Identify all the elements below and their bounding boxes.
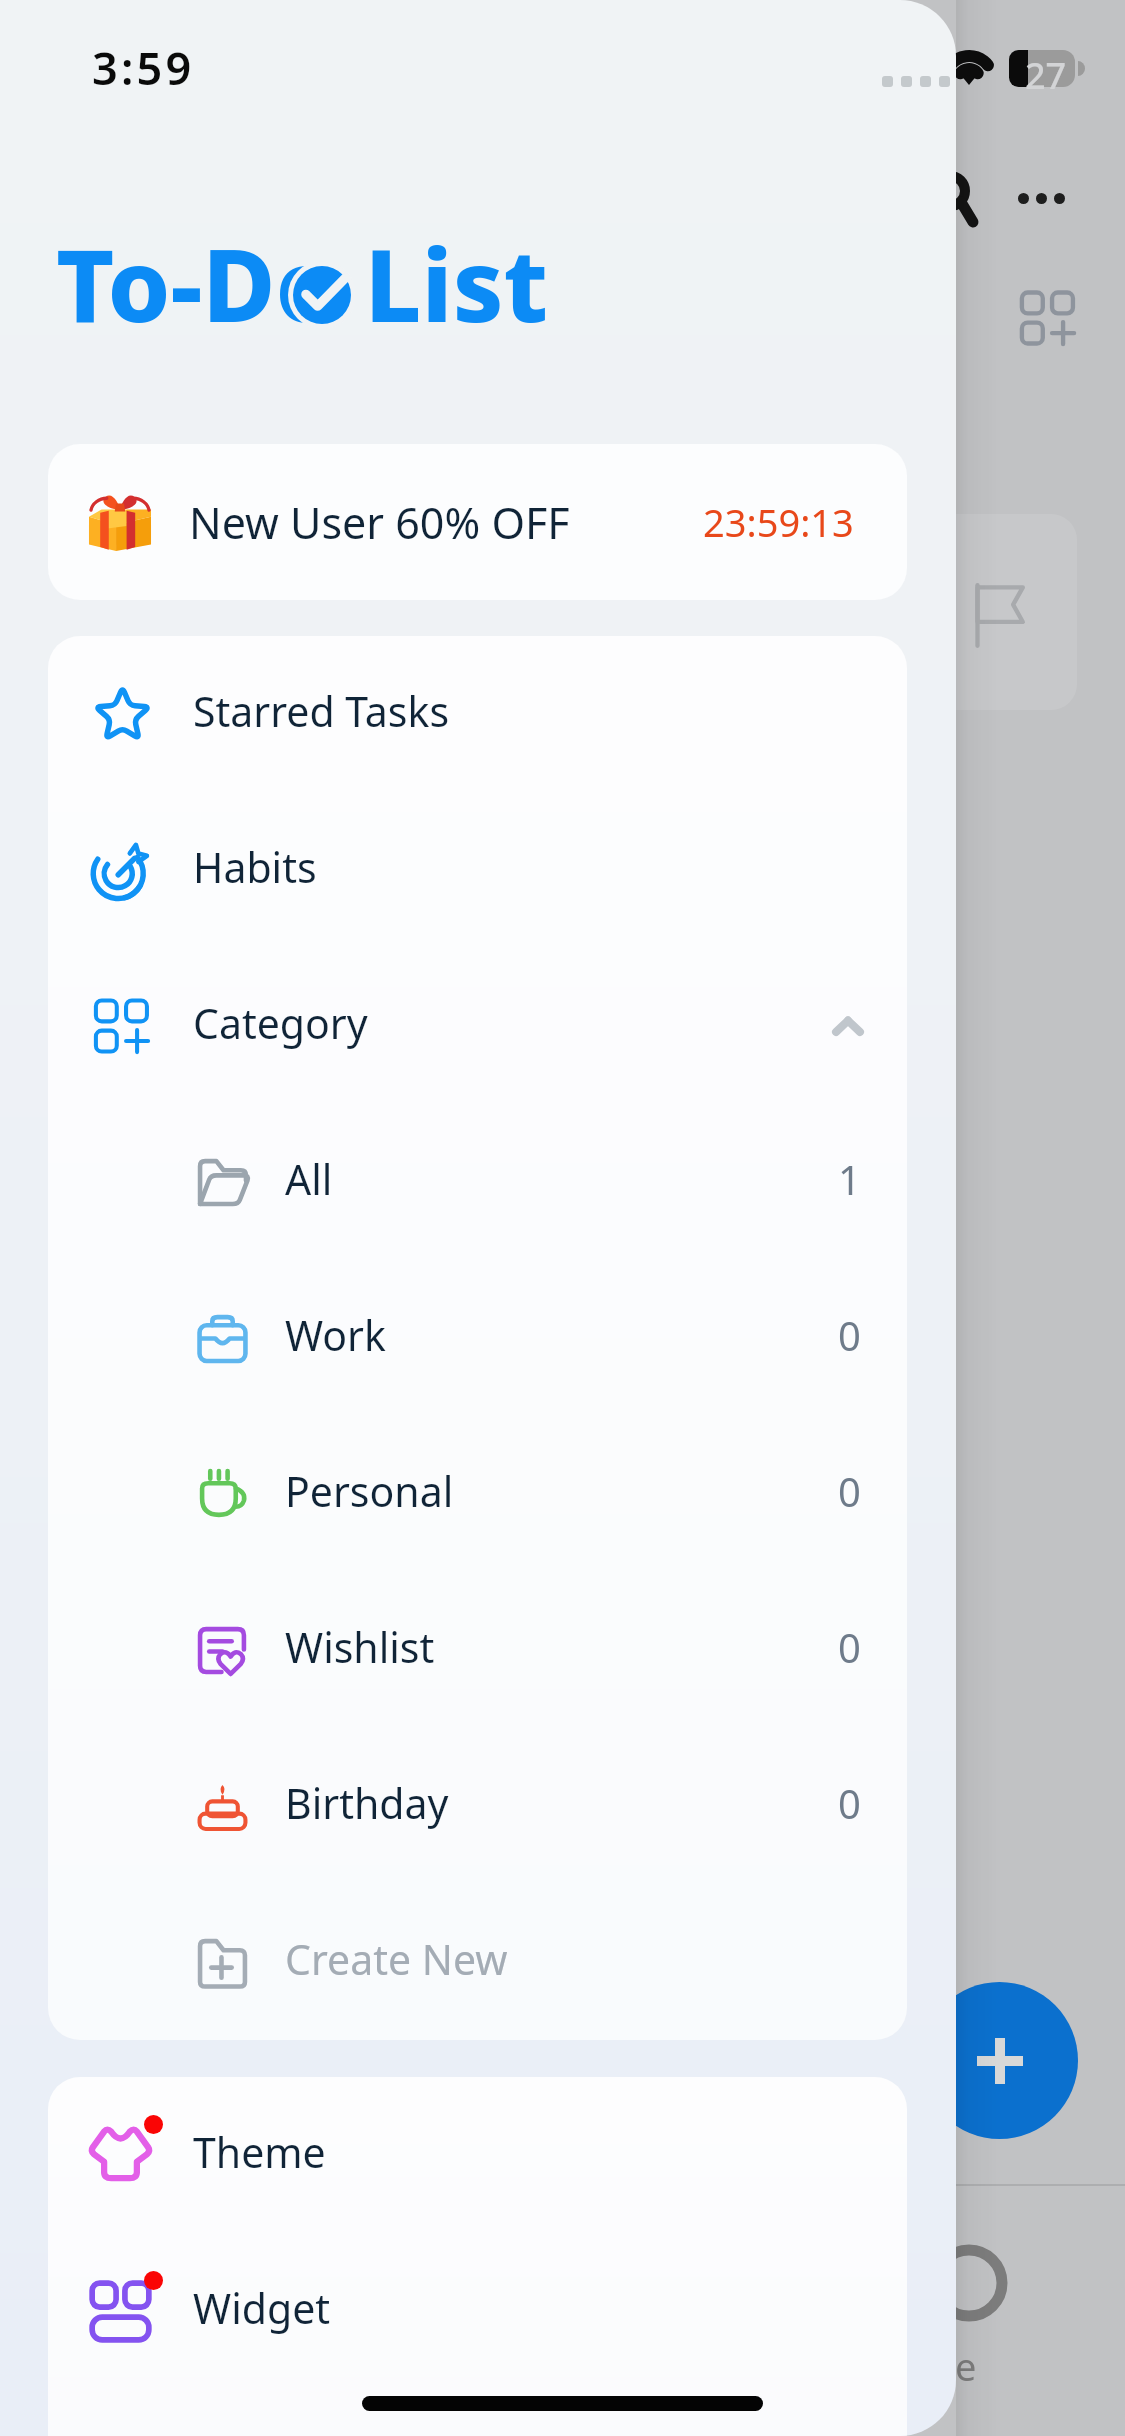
button[interactable]: Personal	[48, 1416, 907, 1572]
staticText: To-Do List	[56, 215, 549, 351]
staticText: 1	[838, 1152, 861, 1206]
staticText: 0	[838, 1776, 861, 1830]
staticText: 3:59	[92, 37, 195, 98]
staticText: e	[955, 2340, 977, 2392]
button[interactable]: More options	[994, 150, 1090, 246]
staticText: 0	[838, 1620, 861, 1674]
staticText: 0	[838, 1308, 861, 1362]
button[interactable]: Add category	[1000, 270, 1096, 366]
staticText: Category	[193, 995, 368, 1051]
button[interactable]: New User 60% OFF	[48, 444, 907, 600]
staticText: New User 60% OFF	[189, 493, 570, 552]
staticText: Widget	[193, 2280, 331, 2336]
button[interactable]: Birthday	[48, 1728, 907, 1884]
staticText: Create New	[285, 1931, 508, 1987]
staticText: Habits	[193, 839, 317, 895]
button[interactable]: Category	[48, 948, 907, 1104]
button[interactable]: Search	[900, 140, 1010, 250]
staticText: Wishlist	[285, 1619, 435, 1675]
staticText: Starred Tasks	[193, 683, 450, 739]
button[interactable]: Habits	[48, 792, 907, 948]
button[interactable]: Widget	[48, 2233, 907, 2389]
staticText: Personal	[285, 1463, 454, 1519]
staticText: All	[285, 1151, 333, 1207]
button[interactable]: All	[48, 1104, 907, 1260]
staticText: 0	[838, 1464, 861, 1518]
staticText: 23:59:13	[703, 496, 854, 548]
button[interactable]: Wishlist	[48, 1572, 907, 1728]
staticText: Birthday	[285, 1775, 449, 1831]
staticText: Theme	[193, 2124, 326, 2180]
button[interactable]: Add task	[921, 1982, 1078, 2139]
staticText: Work	[285, 1307, 386, 1363]
button[interactable]: Theme	[48, 2077, 907, 2233]
button[interactable]: Work	[48, 1260, 907, 1416]
button[interactable]: Create New	[48, 1884, 907, 2040]
staticText: 27	[1025, 51, 1067, 100]
button[interactable]: Starred Tasks	[48, 636, 907, 792]
